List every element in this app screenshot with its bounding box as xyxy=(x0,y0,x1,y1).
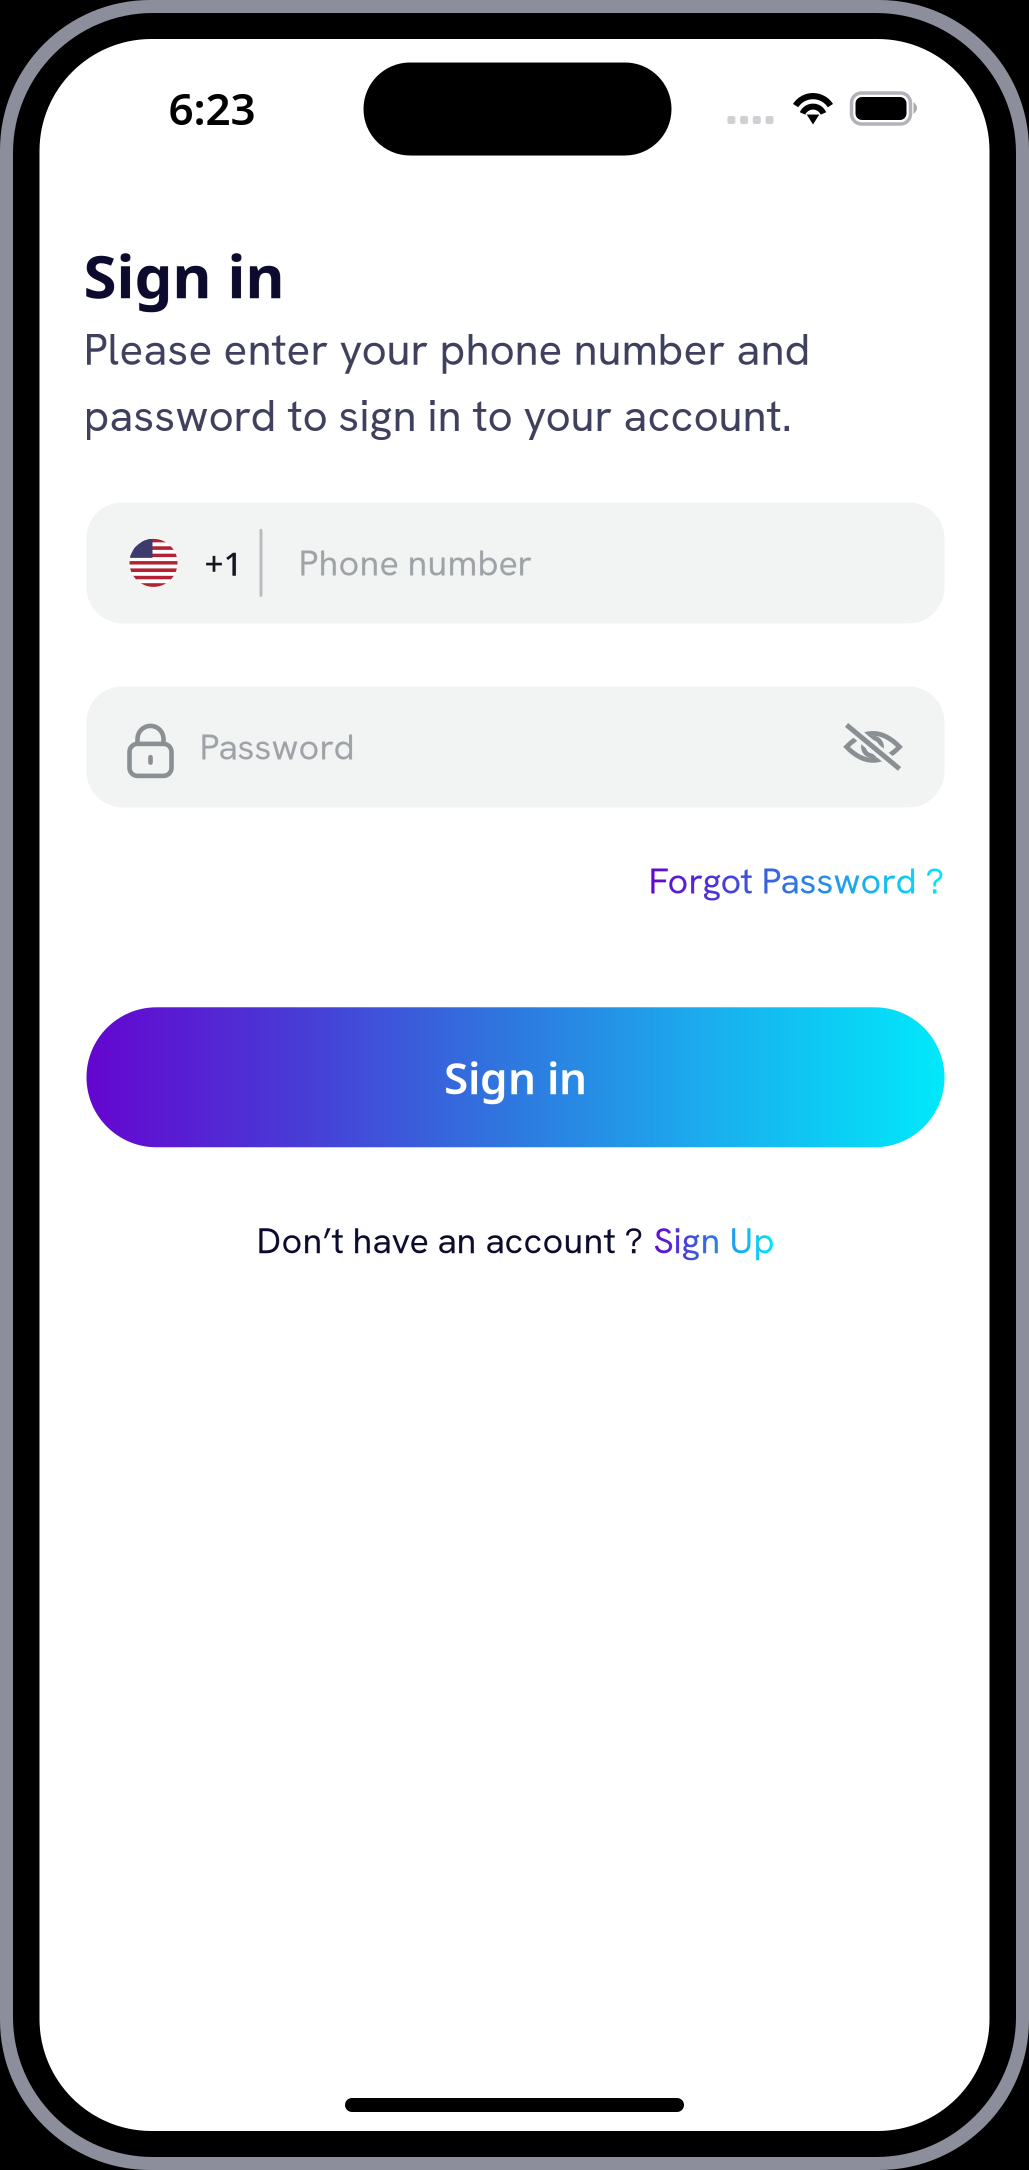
staticText: Please enter your phone number and xyxy=(83,321,810,378)
button[interactable]: Don’t have an account ? xyxy=(256,1217,774,1264)
button[interactable]: Forgot Password ? xyxy=(648,857,944,904)
staticText: Sign Up xyxy=(653,1217,774,1264)
staticText: password to sign in to your account. xyxy=(83,387,792,444)
staticText: Password xyxy=(199,723,354,770)
staticText: Phone number xyxy=(298,539,532,586)
staticText: Don’t have an account ? xyxy=(256,1217,643,1264)
staticText: Forgot Password ? xyxy=(648,857,944,904)
button[interactable]: Show password xyxy=(844,722,901,772)
button[interactable]: +1 xyxy=(86,502,944,623)
staticText: Sign in xyxy=(83,234,284,316)
staticText: 6:23 xyxy=(168,78,255,138)
button[interactable]: Sign in xyxy=(86,1007,944,1147)
staticText: +1 xyxy=(204,540,242,586)
staticText: Sign in xyxy=(444,1047,587,1107)
